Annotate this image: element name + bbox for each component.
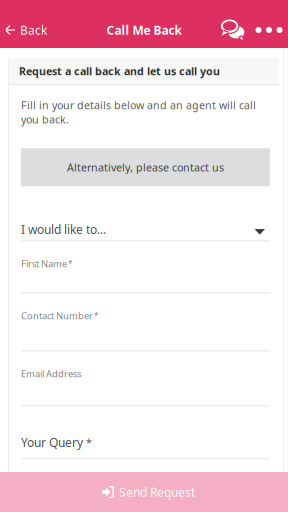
- staticText: Alternatively, please contact us: [67, 160, 224, 174]
- staticText: Send Request: [119, 484, 195, 500]
- staticText: Contact Number: [21, 309, 93, 322]
- staticText: Call Me Back: [106, 22, 181, 38]
- staticText: Email Address: [21, 367, 81, 380]
- staticText: Back: [20, 22, 47, 38]
- button[interactable]: More options: [250, 12, 288, 48]
- staticText: *: [68, 258, 72, 269]
- staticText: Fill in your details below and an agent …: [21, 98, 256, 126]
- staticText: First Name: [21, 257, 67, 270]
- staticText: *: [94, 310, 98, 321]
- button[interactable]: Chat: [216, 12, 250, 48]
- button[interactable]: Back: [0, 12, 57, 48]
- staticText: Your Query: [21, 434, 83, 450]
- staticText: Request a call back and let us call you: [19, 64, 220, 78]
- staticText: *: [86, 435, 92, 449]
- button[interactable]: Send Request: [0, 472, 288, 512]
- staticText: I would like to...: [21, 221, 106, 237]
